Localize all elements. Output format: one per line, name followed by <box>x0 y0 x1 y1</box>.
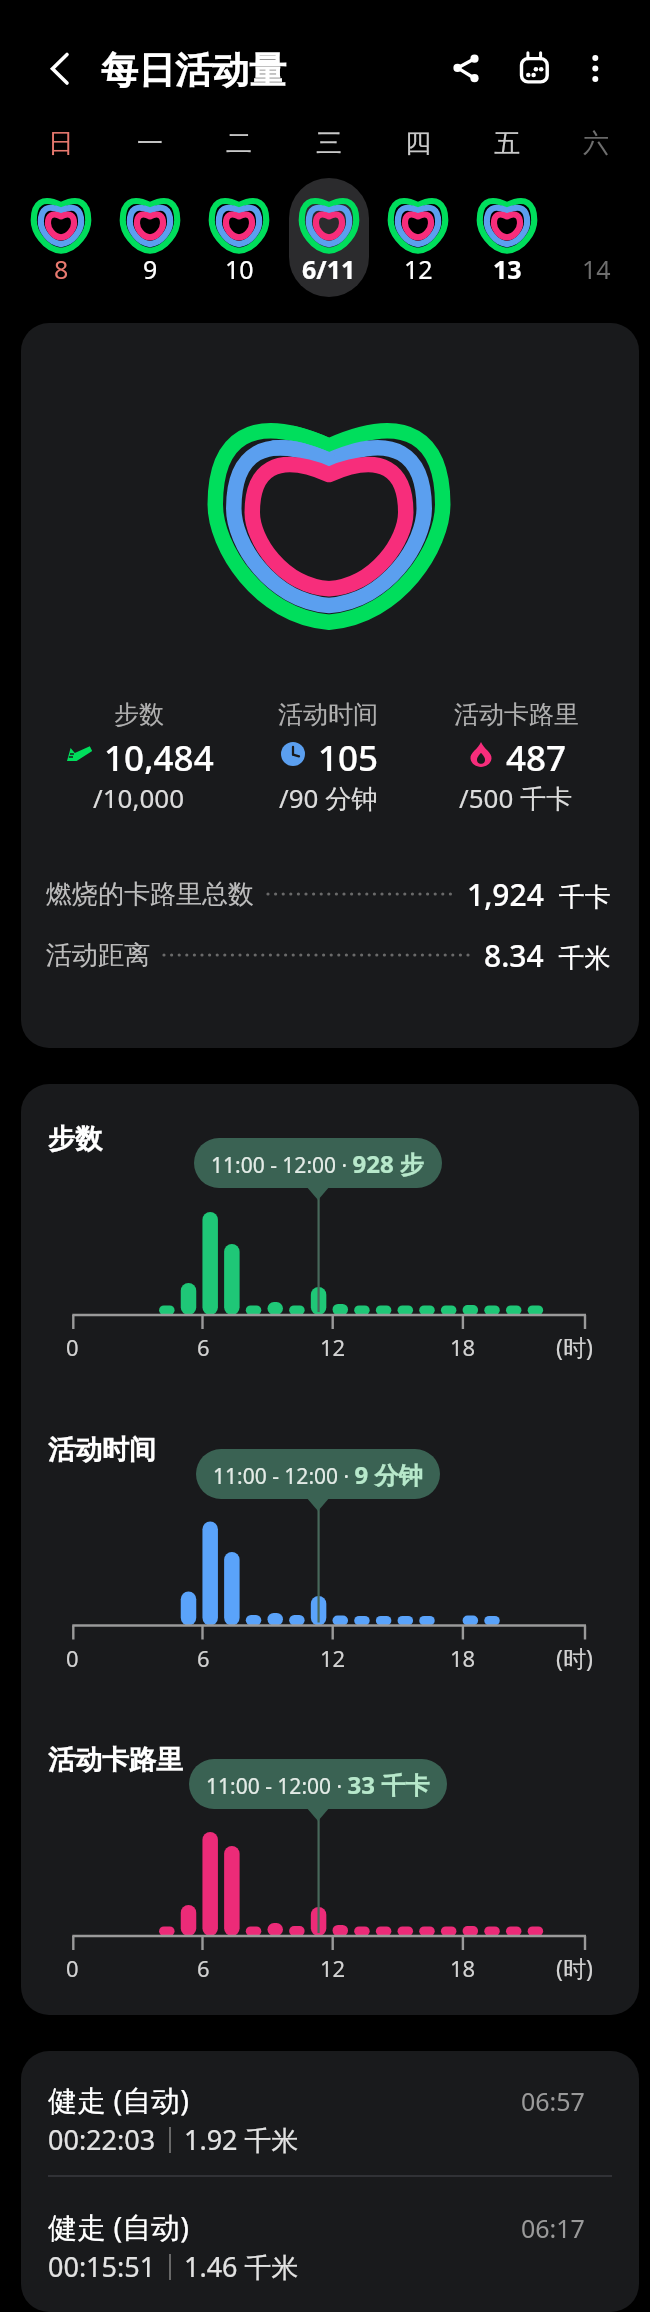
button[interactable] <box>21 1165 639 1415</box>
staticText: 00:22:03 <box>48 2121 156 2158</box>
staticText: (时) <box>556 1331 593 1362</box>
button[interactable]: Share <box>442 44 490 92</box>
staticText: 11:00 - 12:00 · 9 分钟 <box>213 1458 423 1491</box>
button[interactable]: 活动距离 <box>46 932 611 978</box>
button[interactable]: More options <box>572 44 620 92</box>
staticText: (时) <box>556 1952 593 1983</box>
staticText: 步数 <box>48 1122 102 1156</box>
button[interactable] <box>21 178 101 297</box>
button[interactable] <box>21 1476 639 1726</box>
staticText: /500 千卡 <box>459 780 573 814</box>
staticText: /90 分钟 <box>279 780 378 814</box>
staticText: (时) <box>556 1642 593 1673</box>
button[interactable] <box>21 1786 639 2015</box>
staticText: 三 <box>316 127 342 160</box>
staticText: 12 <box>320 1643 346 1673</box>
staticText: 活动卡路里 <box>48 1743 183 1777</box>
staticText: 18 <box>450 1953 476 1983</box>
staticText: 0 <box>66 1332 79 1362</box>
staticText: 二 <box>226 127 252 160</box>
staticText: 6 <box>197 1332 210 1362</box>
staticText: 18 <box>450 1332 476 1362</box>
staticText: 6 <box>197 1643 210 1673</box>
staticText: 13 <box>493 252 522 286</box>
staticText: 活动时间 <box>48 1433 156 1467</box>
staticText: 1.92 千米 <box>184 2121 299 2158</box>
staticText: 活动时间 <box>278 699 378 730</box>
staticText: 18 <box>450 1643 476 1673</box>
staticText: 活动卡路里 <box>454 699 579 730</box>
staticText: 12 <box>320 1953 346 1983</box>
staticText: 6 <box>197 1953 210 1983</box>
staticText: 12 <box>404 252 433 286</box>
staticText: 12 <box>320 1332 346 1362</box>
button[interactable] <box>467 178 547 297</box>
staticText: 06:57 <box>521 2084 585 2118</box>
staticText: 10 <box>225 252 254 286</box>
button[interactable]: 11:00 - 12:00 · 928 步 <box>194 1138 442 1188</box>
button[interactable]: 健走 (自动) <box>21 2178 639 2302</box>
staticText: 487 <box>506 734 567 774</box>
staticText: 燃烧的卡路里总数 <box>46 878 254 911</box>
staticText: 四 <box>405 127 431 160</box>
staticText: 六 <box>583 127 609 160</box>
staticText: 00:15:51 <box>48 2248 156 2285</box>
staticText: 9 <box>143 252 158 286</box>
button[interactable]: Calendar <box>510 44 558 92</box>
staticText: 每日活动量 <box>101 47 286 94</box>
button[interactable] <box>289 178 369 297</box>
button[interactable]: 11:00 - 12:00 · 9 分钟 <box>196 1449 440 1499</box>
staticText: 活动距离 <box>46 939 150 972</box>
staticText: /10,000 <box>93 780 185 814</box>
staticText: 10,484 <box>104 734 214 774</box>
button[interactable]: 11:00 - 12:00 · 33 千卡 <box>189 1759 447 1809</box>
staticText: 1.46 千米 <box>184 2248 299 2285</box>
button[interactable] <box>199 178 279 297</box>
button[interactable]: Back <box>35 44 83 92</box>
staticText: 健走 (自动) <box>48 2080 189 2120</box>
staticText: 五 <box>494 127 520 160</box>
button[interactable]: 燃烧的卡路里总数 <box>46 871 611 917</box>
staticText: 0 <box>66 1643 79 1673</box>
button[interactable] <box>110 178 190 297</box>
staticText: 6/11 <box>302 252 356 286</box>
staticText: 06:17 <box>521 2211 585 2245</box>
staticText: 步数 <box>114 699 164 730</box>
staticText: 105 <box>318 734 379 774</box>
staticText: 日 <box>48 127 74 160</box>
button[interactable]: 活动卡路里 <box>422 698 610 828</box>
staticText: 11:00 - 12:00 · 33 千卡 <box>206 1768 430 1801</box>
staticText: 健走 (自动) <box>48 2207 189 2247</box>
staticText: 一 <box>137 127 163 160</box>
button[interactable]: 活动时间 <box>234 698 422 828</box>
button[interactable]: 步数 <box>21 323 639 1048</box>
staticText: 11:00 - 12:00 · 928 步 <box>211 1147 425 1180</box>
button[interactable]: 健走 (自动) <box>21 2051 639 2175</box>
staticText: 0 <box>66 1953 79 1983</box>
staticText: 1,924 千卡 <box>467 874 611 915</box>
button[interactable]: 步数 <box>45 698 233 828</box>
staticText: 14 <box>582 252 611 286</box>
staticText: 8 <box>54 252 69 286</box>
staticText: 8.34 千米 <box>484 935 611 976</box>
button[interactable] <box>556 178 636 297</box>
button[interactable] <box>378 178 458 297</box>
